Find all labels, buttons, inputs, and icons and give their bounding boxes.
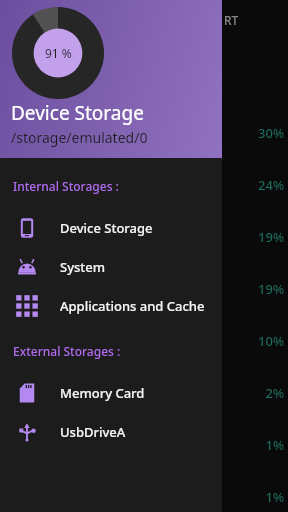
staticText: 2% xyxy=(0,384,284,402)
staticText: 10% xyxy=(0,332,284,350)
staticText: /storage/emulated/0 xyxy=(11,128,148,147)
staticText: 19% xyxy=(0,228,284,246)
staticText: 91 % xyxy=(45,45,72,61)
staticText: Internal Storages : xyxy=(13,178,119,194)
button[interactable]: Memory Card xyxy=(0,373,222,412)
button[interactable]: UsbDriveA xyxy=(0,412,222,451)
staticText: Memory Card xyxy=(60,384,145,402)
staticText: UsbDriveA xyxy=(60,423,126,441)
staticText: Device Storage xyxy=(60,219,153,237)
button[interactable]: System xyxy=(0,247,222,286)
staticText: 1% xyxy=(0,436,284,454)
staticText: Applications and Cache xyxy=(60,297,205,315)
button[interactable]: Device Storage xyxy=(0,208,222,247)
staticText: System xyxy=(60,258,106,276)
staticText: 24% xyxy=(0,176,284,194)
staticText: 19% xyxy=(0,280,284,298)
staticText: RT xyxy=(224,12,239,28)
staticText: 1% xyxy=(0,488,284,506)
staticText: 30% xyxy=(0,124,284,142)
staticText: External Storages : xyxy=(13,343,121,359)
button[interactable]: Applications and Cache xyxy=(0,286,222,325)
staticText: Device Storage xyxy=(11,100,144,126)
